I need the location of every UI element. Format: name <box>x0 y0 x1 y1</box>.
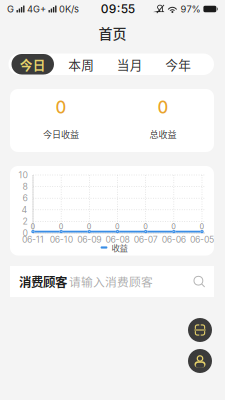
button[interactable]: 当月 <box>105 53 154 75</box>
staticText: 今年 <box>165 55 191 73</box>
staticText: 0 <box>157 97 168 118</box>
staticText: 今日收益 <box>43 127 79 140</box>
staticText: 0 <box>115 222 120 231</box>
staticText: 今日 <box>20 55 46 73</box>
staticText: 09:55 <box>101 2 135 16</box>
staticText: 总收益 <box>149 127 176 140</box>
staticText: 0 <box>143 222 148 231</box>
staticText: 消费顾客 <box>19 272 67 290</box>
staticText: 4 <box>21 205 27 215</box>
staticText: 0 <box>30 222 35 231</box>
staticText: 06-05 <box>190 234 214 245</box>
staticText: 收益 <box>111 241 127 254</box>
staticText: 0K/s <box>59 3 79 15</box>
button[interactable]: 今年 <box>154 53 202 75</box>
button[interactable]: 本周 <box>57 53 105 75</box>
staticText: 0 <box>171 222 176 231</box>
staticText: 4G+ <box>27 3 46 15</box>
staticText: 当月 <box>117 55 143 73</box>
staticText: 6 <box>22 193 27 203</box>
staticText: 2 <box>22 216 27 227</box>
staticText: 06-08 <box>105 234 129 245</box>
staticText: 06-11 <box>22 234 44 245</box>
staticText: 06-07 <box>134 234 158 245</box>
staticText: 请输入消费顾客 <box>69 273 153 290</box>
staticText: 06-10 <box>50 234 73 245</box>
staticText: 0 <box>22 228 27 238</box>
staticText: 0 <box>199 222 204 231</box>
button[interactable]: 顾客 <box>188 349 212 373</box>
button[interactable]: 扫一扫 <box>188 318 212 342</box>
staticText: 0 <box>55 97 66 118</box>
staticText: 10 <box>18 170 27 180</box>
staticText: 本周 <box>68 55 94 73</box>
staticText: 06-09 <box>77 234 101 245</box>
staticText: G <box>7 3 14 15</box>
button[interactable]: 今日 <box>8 53 57 75</box>
staticText: 0 <box>59 222 64 231</box>
staticText: 首页 <box>98 23 126 43</box>
staticText: 06-06 <box>162 234 186 245</box>
button[interactable]: 消费顾客 <box>10 266 214 297</box>
staticText: 8 <box>22 181 27 192</box>
staticText: 97% <box>180 3 200 15</box>
staticText: 0 <box>87 222 92 231</box>
